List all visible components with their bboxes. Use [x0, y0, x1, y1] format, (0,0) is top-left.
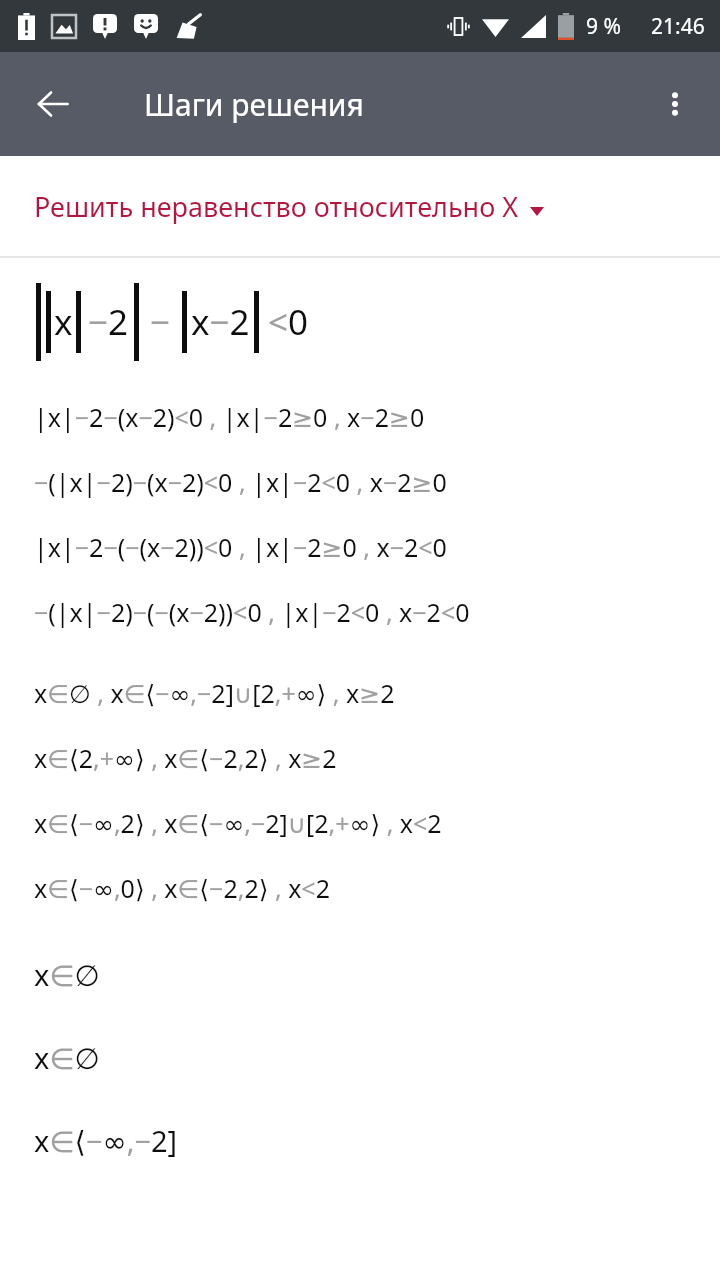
- button[interactable]: Решить неравенство относительно X: [0, 156, 720, 256]
- staticText: x∈⟨−∞,−2]: [34, 1121, 178, 1160]
- staticText: Решить неравенство относительно X: [34, 188, 519, 225]
- staticText: x−2: [191, 298, 250, 346]
- staticText: −: [150, 298, 171, 346]
- staticText: x∈∅ , x∈⟨−∞,−2]∪[2,+∞⟩ , x≥2: [34, 676, 395, 710]
- staticText: <0: [268, 298, 309, 346]
- staticText: x∈⟨−∞,2⟩ , x∈⟨−∞,−2]∪[2,+∞⟩ , x<2: [34, 806, 442, 840]
- button[interactable]: Назад: [24, 75, 82, 133]
- staticText: x: [54, 298, 73, 346]
- staticText: −(|x|−2)−(−(x−2))<0 , |x|−2<0 , x−2<0: [34, 595, 470, 629]
- staticText: x∈∅: [34, 955, 100, 994]
- staticText: x∈⟨−∞,0⟩ , x∈⟨−2,2⟩ , x<2: [34, 871, 330, 905]
- staticText: Шаги решения: [144, 84, 364, 125]
- staticText: |x|−2−(x−2)<0 , |x|−2≥0 , x−2≥0: [34, 400, 425, 434]
- staticText: −(|x|−2)−(x−2)<0 , |x|−2<0 , x−2≥0: [34, 465, 447, 499]
- staticText: 21:46: [651, 12, 705, 41]
- staticText: −2: [88, 298, 129, 346]
- staticText: 9 %: [586, 12, 621, 41]
- staticText: x∈⟨2,+∞⟩ , x∈⟨−2,2⟩ , x≥2: [34, 741, 337, 775]
- staticText: |x|−2−(−(x−2))<0 , |x|−2≥0 , x−2<0: [34, 530, 447, 564]
- staticText: x∈∅: [34, 1038, 100, 1077]
- button[interactable]: Меню: [646, 75, 704, 133]
